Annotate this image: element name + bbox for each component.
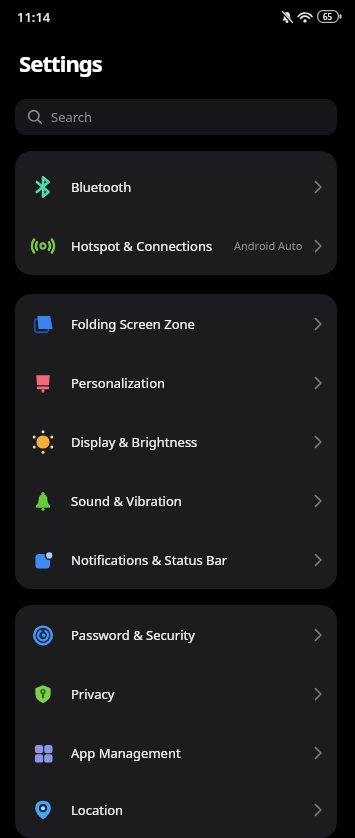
button[interactable]: Notifications & Status Bar <box>15 530 337 589</box>
button[interactable]: Personalization <box>15 353 337 412</box>
staticText: Privacy <box>71 685 115 703</box>
staticText: Folding Screen Zone <box>71 315 195 333</box>
staticText: Hotspot & Connections <box>71 237 213 255</box>
button[interactable]: Display & Brightness <box>15 412 337 471</box>
staticText: Settings <box>19 48 102 78</box>
staticText: Display & Brightness <box>71 433 198 451</box>
staticText: Password & Security <box>71 626 195 644</box>
staticText: 11:14 <box>17 8 51 26</box>
staticText: Android Auto <box>234 238 303 253</box>
button[interactable]: Folding Screen Zone <box>15 294 337 353</box>
staticText: Personalization <box>71 374 166 392</box>
button[interactable]: Password & Security <box>15 605 337 664</box>
staticText: 65 <box>323 11 333 22</box>
button[interactable]: Hotspot & Connections <box>15 216 337 275</box>
staticText: Location <box>71 801 124 819</box>
staticText: Search <box>51 108 93 126</box>
button[interactable]: Bluetooth <box>15 157 337 216</box>
staticText: App Management <box>71 744 181 762</box>
button[interactable]: Sound & Vibration <box>15 471 337 530</box>
button[interactable]: App Management <box>15 723 337 782</box>
staticText: Notifications & Status Bar <box>71 551 228 569</box>
button[interactable]: Privacy <box>15 664 337 723</box>
staticText: Bluetooth <box>71 178 132 196</box>
staticText: Sound & Vibration <box>71 492 182 510</box>
button[interactable]: Location <box>15 782 337 838</box>
button[interactable]: Search <box>15 99 337 135</box>
